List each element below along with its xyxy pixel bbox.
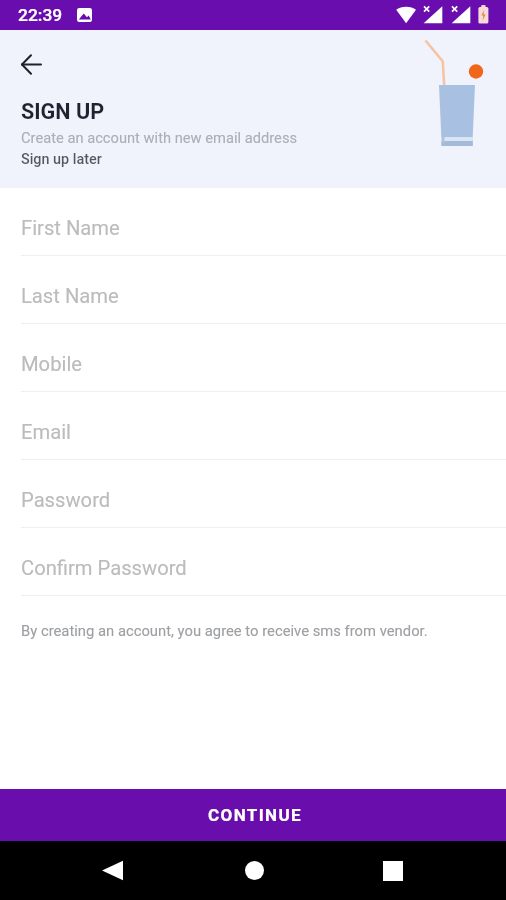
staticText: Sign up later	[21, 151, 102, 168]
button[interactable]: Back	[90, 841, 134, 900]
button[interactable]: Password	[0, 460, 506, 528]
staticText: SIGN UP	[21, 99, 105, 124]
button[interactable]: Recents	[371, 841, 415, 900]
button[interactable]: CONTINUE	[0, 789, 506, 841]
staticText: First Name	[21, 216, 120, 240]
button[interactable]: First Name	[0, 188, 506, 256]
button[interactable]: Home	[232, 841, 276, 900]
staticText: Create an account with new email address	[21, 129, 298, 146]
staticText: 22:39	[18, 5, 63, 25]
button[interactable]: Email	[0, 392, 506, 460]
staticText: CONTINUE	[208, 805, 303, 825]
button[interactable]: Confirm Password	[0, 528, 506, 596]
staticText: Password	[21, 488, 111, 512]
button[interactable]: Sign up later	[17, 150, 106, 169]
staticText: Last Name	[21, 284, 119, 308]
staticText: Email	[21, 420, 71, 444]
staticText: Mobile	[21, 352, 82, 376]
button[interactable]: Last Name	[0, 256, 506, 324]
button[interactable]: Mobile	[0, 324, 506, 392]
button[interactable]: Back	[8, 42, 53, 87]
staticText: By creating an account, you agree to rec…	[21, 622, 428, 639]
staticText: Confirm Password	[21, 556, 187, 580]
